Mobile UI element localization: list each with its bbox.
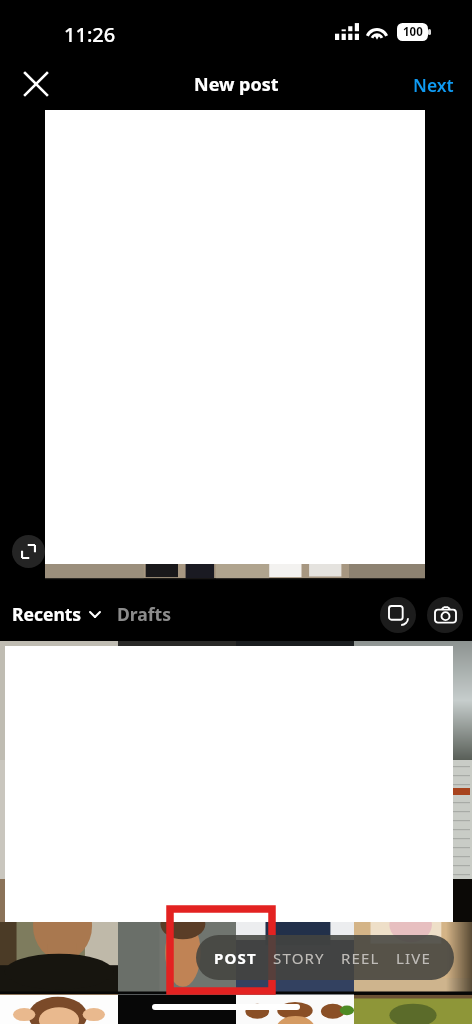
button[interactable]: Camera bbox=[427, 597, 463, 633]
staticText: STORY bbox=[273, 948, 325, 968]
button[interactable]: Close bbox=[14, 62, 58, 106]
button[interactable]: Select multiple bbox=[380, 597, 416, 633]
button[interactable]: LIVE bbox=[388, 935, 440, 980]
button[interactable]: Drafts bbox=[111, 592, 177, 636]
staticText: POST bbox=[214, 948, 257, 968]
staticText: 100 bbox=[403, 24, 423, 40]
button[interactable]: Next bbox=[401, 62, 466, 108]
staticText: REEL bbox=[341, 948, 380, 968]
staticText: LIVE bbox=[396, 948, 432, 968]
button[interactable]: REEL bbox=[333, 935, 388, 980]
staticText: New post bbox=[194, 72, 279, 97]
button[interactable]: STORY bbox=[265, 935, 333, 980]
staticText: 11:26 bbox=[64, 21, 116, 48]
staticText: Recents bbox=[12, 602, 82, 626]
button[interactable]: POST bbox=[196, 935, 265, 980]
staticText: Next bbox=[413, 73, 454, 97]
button[interactable]: Expand bbox=[12, 535, 45, 568]
staticText: Drafts bbox=[117, 602, 171, 626]
button[interactable]: Recents bbox=[6, 592, 107, 636]
